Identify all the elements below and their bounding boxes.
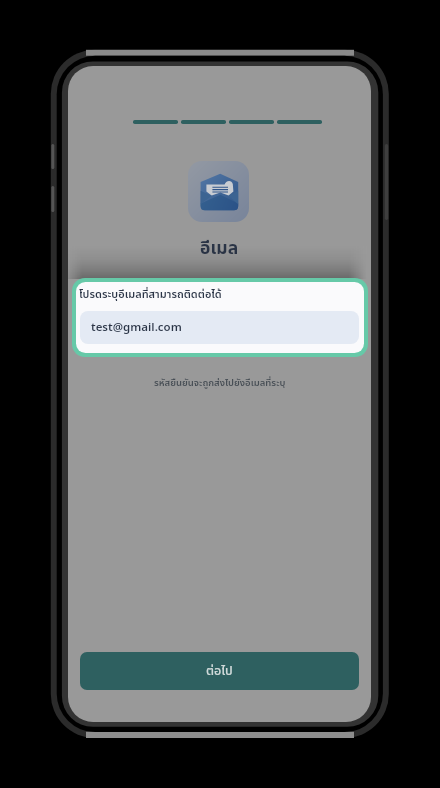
staticText: โปรดระบุอีเมลที่สามารถติดต่อได้ xyxy=(79,286,222,303)
other: Email xyxy=(188,161,249,222)
button[interactable]: ต่อไป xyxy=(80,652,359,690)
staticText: อีเมล xyxy=(200,235,239,261)
staticText: ต่อไป xyxy=(206,662,233,681)
staticText: รหัสยืนยันจะถูกส่งไปยังอีเมลที่ระบุ xyxy=(154,376,286,390)
staticText: test@gmail.com xyxy=(91,319,182,336)
button[interactable]: test@gmail.com xyxy=(80,311,359,344)
